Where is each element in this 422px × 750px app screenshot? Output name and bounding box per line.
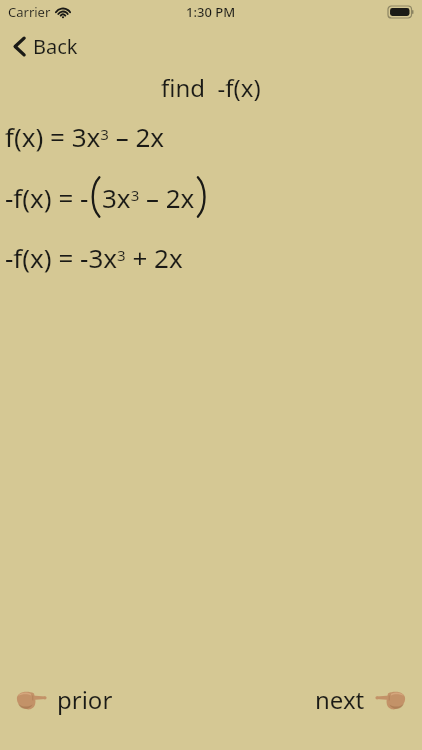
staticText: prior [57, 683, 113, 716]
staticText: Back [33, 33, 78, 60]
staticText: -f(x) = -3x3 + 2x [5, 240, 183, 275]
other: Previous [16, 689, 46, 711]
staticText: f(x) = 3x3 – 2x [5, 119, 165, 154]
other: Next [376, 689, 406, 711]
staticText: 1:30 PM [186, 3, 236, 21]
button[interactable]: next [311, 679, 410, 720]
button[interactable]: Back [8, 29, 84, 64]
staticText: next [315, 683, 365, 716]
button[interactable]: Previous [12, 679, 117, 720]
staticText: find -f(x) [161, 71, 261, 104]
staticText: 3x3 – 2x [102, 180, 195, 215]
other: Back [14, 37, 25, 56]
staticText: Carrier [8, 3, 51, 21]
staticText: -f(x) = - [5, 180, 89, 215]
